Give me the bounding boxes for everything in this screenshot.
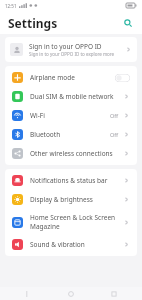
staticText: Other wireless connections xyxy=(30,149,113,158)
button[interactable]: Notifications & status bar xyxy=(5,171,137,190)
button[interactable]: Wi-Fi xyxy=(5,106,137,125)
staticText: Sign in to your OPPO ID xyxy=(29,42,102,51)
button[interactable]: Other wireless connections xyxy=(5,144,137,163)
button[interactable]: Display & brightness xyxy=(5,190,137,209)
button[interactable]: Recents xyxy=(99,287,129,300)
staticText: Settings xyxy=(8,15,58,31)
staticText: 12:51 xyxy=(5,3,17,9)
button[interactable]: Airplane mode toggle xyxy=(115,74,130,82)
staticText: Bluetooth xyxy=(30,130,61,139)
staticText: Sound & vibration xyxy=(30,240,85,249)
button[interactable]: Sign in to your OPPO ID xyxy=(5,37,137,62)
button[interactable]: Search xyxy=(122,17,134,29)
staticText: Wi-Fi xyxy=(30,111,45,120)
button[interactable]: Home xyxy=(56,287,86,300)
staticText: Off xyxy=(110,131,119,138)
button[interactable]: Airplane mode xyxy=(5,68,137,87)
staticText: Display & brightness xyxy=(30,195,93,204)
button[interactable]: Dual SIM & mobile network xyxy=(5,87,137,106)
staticText: Airplane mode xyxy=(30,73,75,82)
staticText: Magazine xyxy=(30,222,60,231)
staticText: Off xyxy=(110,112,119,119)
staticText: Sign in to your OPPO ID to explore more xyxy=(29,51,115,57)
button[interactable]: Sound & vibration xyxy=(5,235,137,254)
button[interactable]: Back xyxy=(13,287,43,300)
staticText: Notifications & status bar xyxy=(30,176,108,185)
staticText: Dual SIM & mobile network xyxy=(30,92,114,101)
button[interactable]: Home Screen & Lock Screen xyxy=(5,209,137,235)
button[interactable]: Bluetooth xyxy=(5,125,137,144)
staticText: Home Screen & Lock Screen xyxy=(30,213,116,222)
